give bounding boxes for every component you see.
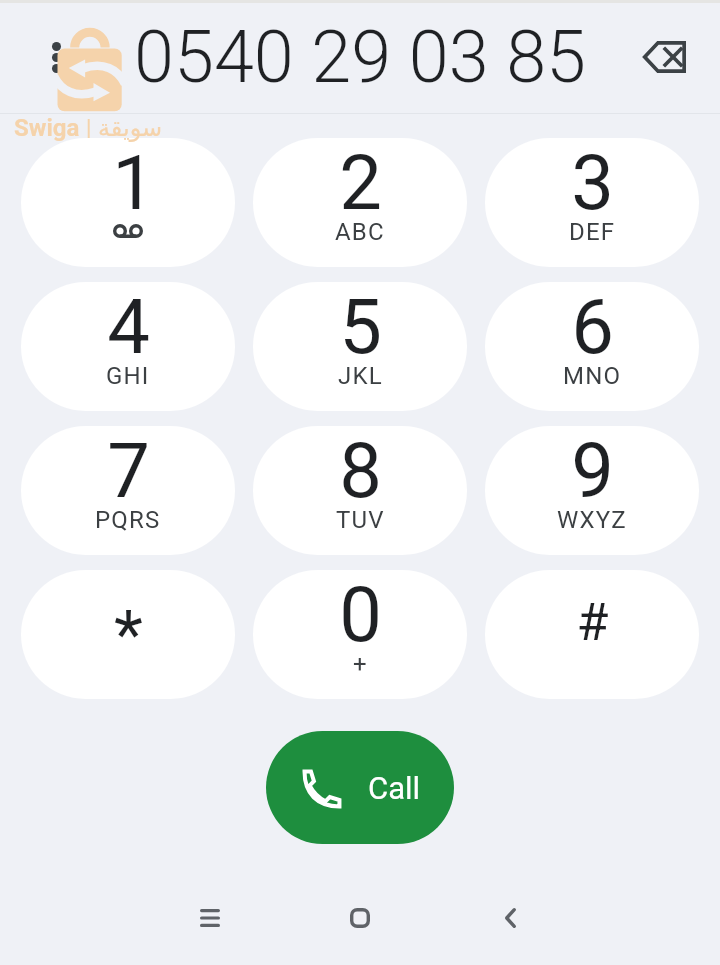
staticText: GHI [106,362,150,390]
staticText: 1 [112,138,155,227]
staticText: TUV [336,506,385,534]
button[interactable]: Recents [135,888,285,948]
button[interactable]: 5 [253,282,467,411]
button[interactable]: 0 [253,570,467,699]
staticText: ABC [335,218,385,246]
staticText: | [86,115,92,141]
staticText: JKL [338,362,383,390]
button[interactable]: 7 [21,426,235,555]
button[interactable]: Home [285,888,435,948]
staticText: PQRS [95,506,161,534]
button[interactable]: 3 [485,138,699,267]
staticText: Call [368,770,421,806]
staticText: WXYZ [557,506,627,534]
staticText: 9 [571,426,614,515]
staticText: 7 [107,426,150,515]
staticText: 0 [339,570,382,659]
staticText: 2 [339,138,382,227]
button[interactable]: # [485,570,699,699]
staticText: # [576,592,609,653]
staticText: 6 [571,282,614,371]
button[interactable]: Backspace [626,19,702,95]
button[interactable]: More options [32,33,80,81]
staticText: 4 [107,282,150,371]
staticText: DEF [569,218,616,246]
button[interactable]: 1 [21,138,235,267]
button[interactable]: 9 [485,426,699,555]
button[interactable]: 2 [253,138,467,267]
button[interactable]: 8 [253,426,467,555]
staticText: Swiga [14,114,80,142]
staticText: 5 [339,282,382,371]
staticText: سويقة [98,114,163,142]
button[interactable]: Call [266,731,454,844]
staticText: * [114,596,143,675]
staticText: 3 [571,138,614,227]
staticText: MNO [563,362,622,390]
button[interactable]: 6 [485,282,699,411]
button[interactable]: Back [435,888,585,948]
button[interactable]: 4 [21,282,235,411]
staticText: 8 [339,426,382,515]
button[interactable]: * [21,570,235,699]
staticText: 0540 29 03 85 [134,15,587,99]
staticText: + [353,650,368,678]
